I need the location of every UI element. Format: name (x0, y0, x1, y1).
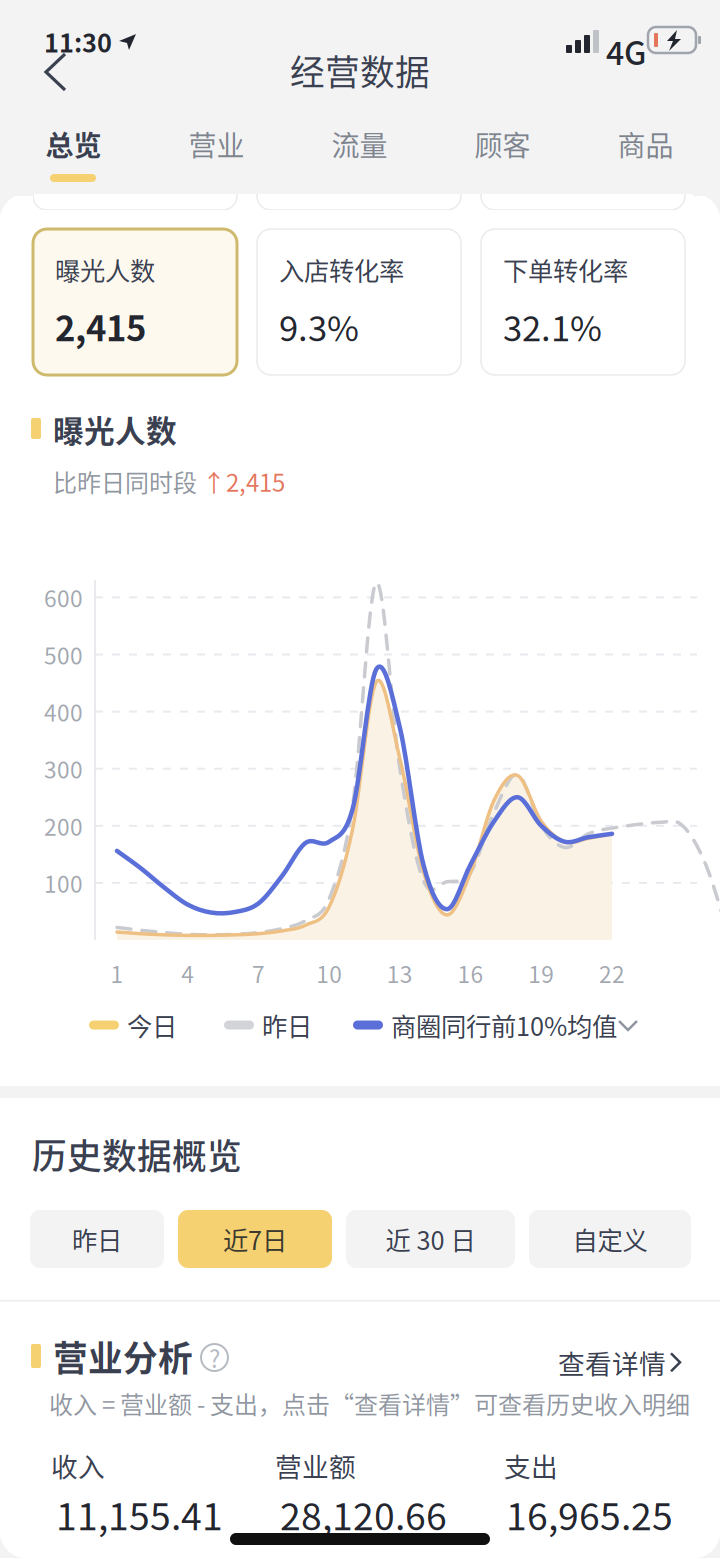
staticText: 商圈同行前10%均值 (391, 1007, 617, 1043)
staticText: 19 (528, 957, 554, 989)
staticText: 顾客 (474, 124, 530, 164)
staticText: 下单转化率 (503, 251, 628, 288)
button[interactable]: 查看详情 (558, 1343, 683, 1382)
staticText: 10 (316, 957, 342, 989)
staticText: 支出 (504, 1446, 558, 1485)
button[interactable]: Back (0, 40, 108, 106)
staticText: 16 (458, 957, 484, 989)
staticText: 商品 (617, 124, 673, 164)
button[interactable]: 营业 (145, 124, 288, 196)
staticText: 今日 (127, 1007, 177, 1043)
staticText: 13 (387, 957, 413, 989)
staticText: 曝光人数 (53, 407, 177, 451)
staticText: 昨日 (262, 1007, 312, 1043)
staticText: 9.3% (279, 301, 359, 351)
button[interactable]: More legend options (617, 1016, 639, 1034)
staticText: 营业分析 (53, 1331, 193, 1381)
button[interactable]: 商品 (574, 124, 717, 196)
button[interactable]: 入店转化率 (257, 229, 461, 375)
staticText: 600 (44, 581, 83, 614)
staticText: 查看详情 (558, 1343, 666, 1382)
staticText: 300 (44, 752, 83, 785)
button[interactable]: 近 30 日 (346, 1210, 515, 1268)
staticText: 2,415 (55, 301, 146, 351)
staticText: 昨日 (72, 1221, 122, 1257)
staticText: 32.1% (503, 301, 602, 351)
staticText: 流量 (331, 124, 387, 164)
staticText: 7 (252, 957, 265, 989)
button[interactable]: 流量 (288, 124, 431, 196)
staticText: 比昨日同时段 (53, 464, 202, 499)
staticText: 总览 (45, 124, 101, 164)
staticText: 收入 = 营业额 - 支出，点击“查看详情”可查看历史收入明细 (49, 1386, 690, 1421)
staticText: 曝光人数 (55, 251, 155, 288)
button[interactable]: 近7日 (178, 1210, 332, 1268)
staticText: 营业额 (275, 1446, 356, 1485)
staticText: 4 (181, 957, 194, 989)
staticText: 28,120.66 (280, 1487, 447, 1541)
staticText: 自定义 (572, 1221, 647, 1257)
button[interactable]: 总览 (2, 124, 145, 196)
staticText: 22 (599, 957, 625, 989)
staticText: 11,155.41 (56, 1487, 223, 1541)
staticText: 经营数据 (290, 45, 430, 95)
staticText: 1 (110, 957, 123, 989)
staticText: 400 (44, 695, 83, 728)
button[interactable]: 自定义 (529, 1210, 691, 1268)
staticText: 历史数据概览 (32, 1129, 242, 1179)
staticText: 500 (44, 638, 83, 671)
staticText: 近7日 (223, 1221, 287, 1257)
staticText: 营业 (188, 124, 244, 164)
button[interactable]: 曝光人数 (33, 229, 237, 375)
staticText: 近 30 日 (385, 1221, 475, 1257)
button[interactable]: 顾客 (431, 124, 574, 196)
staticText: 11:30 (44, 23, 112, 60)
staticText: 4G (606, 28, 646, 74)
staticText: 16,965.25 (506, 1487, 673, 1541)
staticText: ↑2,415 (202, 464, 285, 499)
staticText: 收入 (51, 1446, 105, 1485)
staticText: 入店转化率 (279, 251, 404, 288)
staticText: 200 (44, 809, 83, 842)
staticText: ? (209, 1340, 220, 1375)
staticText: 100 (44, 866, 83, 899)
button[interactable]: 昨日 (30, 1210, 164, 1268)
button[interactable]: 下单转化率 (481, 229, 685, 375)
